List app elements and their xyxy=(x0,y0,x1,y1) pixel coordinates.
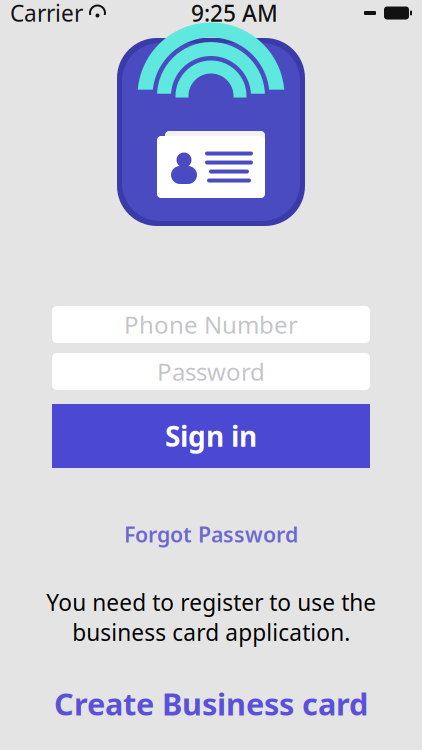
staticText: Sign in xyxy=(165,417,257,455)
staticText: Forgot Password xyxy=(124,520,298,548)
button[interactable]: Create Business card xyxy=(34,675,388,732)
button[interactable]: Phone Number xyxy=(52,306,370,343)
button[interactable]: Password xyxy=(52,353,370,390)
button[interactable]: Sign in xyxy=(52,404,370,468)
staticText: Create Business card xyxy=(54,683,368,724)
button[interactable]: Forgot Password xyxy=(108,514,314,554)
staticText: Phone Number xyxy=(124,309,298,340)
staticText: 9:25 AM xyxy=(191,0,278,28)
staticText: You need to register to use the business… xyxy=(46,587,376,647)
staticText: Carrier xyxy=(10,0,83,28)
staticText: Password xyxy=(157,356,265,387)
